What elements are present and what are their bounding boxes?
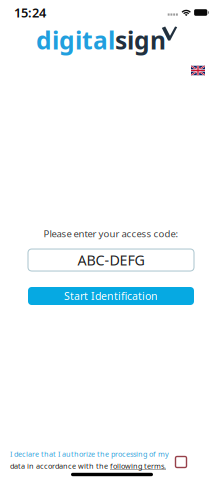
button[interactable]: Start Identification xyxy=(28,287,194,305)
staticText: 15:24 xyxy=(14,4,46,21)
staticText: digital xyxy=(36,23,115,57)
staticText: Please enter your access code: xyxy=(43,227,178,240)
button[interactable]: Language: English xyxy=(191,66,205,75)
button[interactable]: Accept terms xyxy=(175,456,186,467)
button[interactable]: I declare that I authorize the processin… xyxy=(10,449,169,471)
staticText: ABC-DEFG xyxy=(77,250,144,270)
staticText: data in accordance with the following te… xyxy=(10,461,166,471)
staticText: Start Identification xyxy=(64,289,158,303)
staticText: sign xyxy=(115,23,166,57)
staticText: I declare that I authorize the processin… xyxy=(10,449,169,459)
button[interactable]: ABC-DEFG xyxy=(28,249,194,271)
